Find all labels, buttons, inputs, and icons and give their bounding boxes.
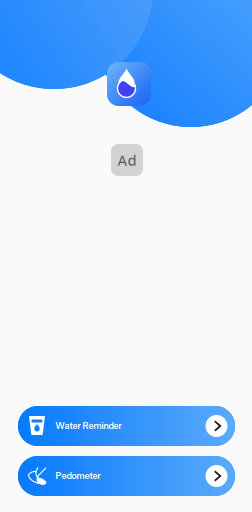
staticText: Pedometer xyxy=(55,470,100,481)
staticText: Ad xyxy=(117,150,136,170)
staticText: Water Reminder xyxy=(55,420,121,431)
button[interactable]: Water Reminder xyxy=(18,406,235,446)
button[interactable]: Pedometer xyxy=(18,456,235,496)
